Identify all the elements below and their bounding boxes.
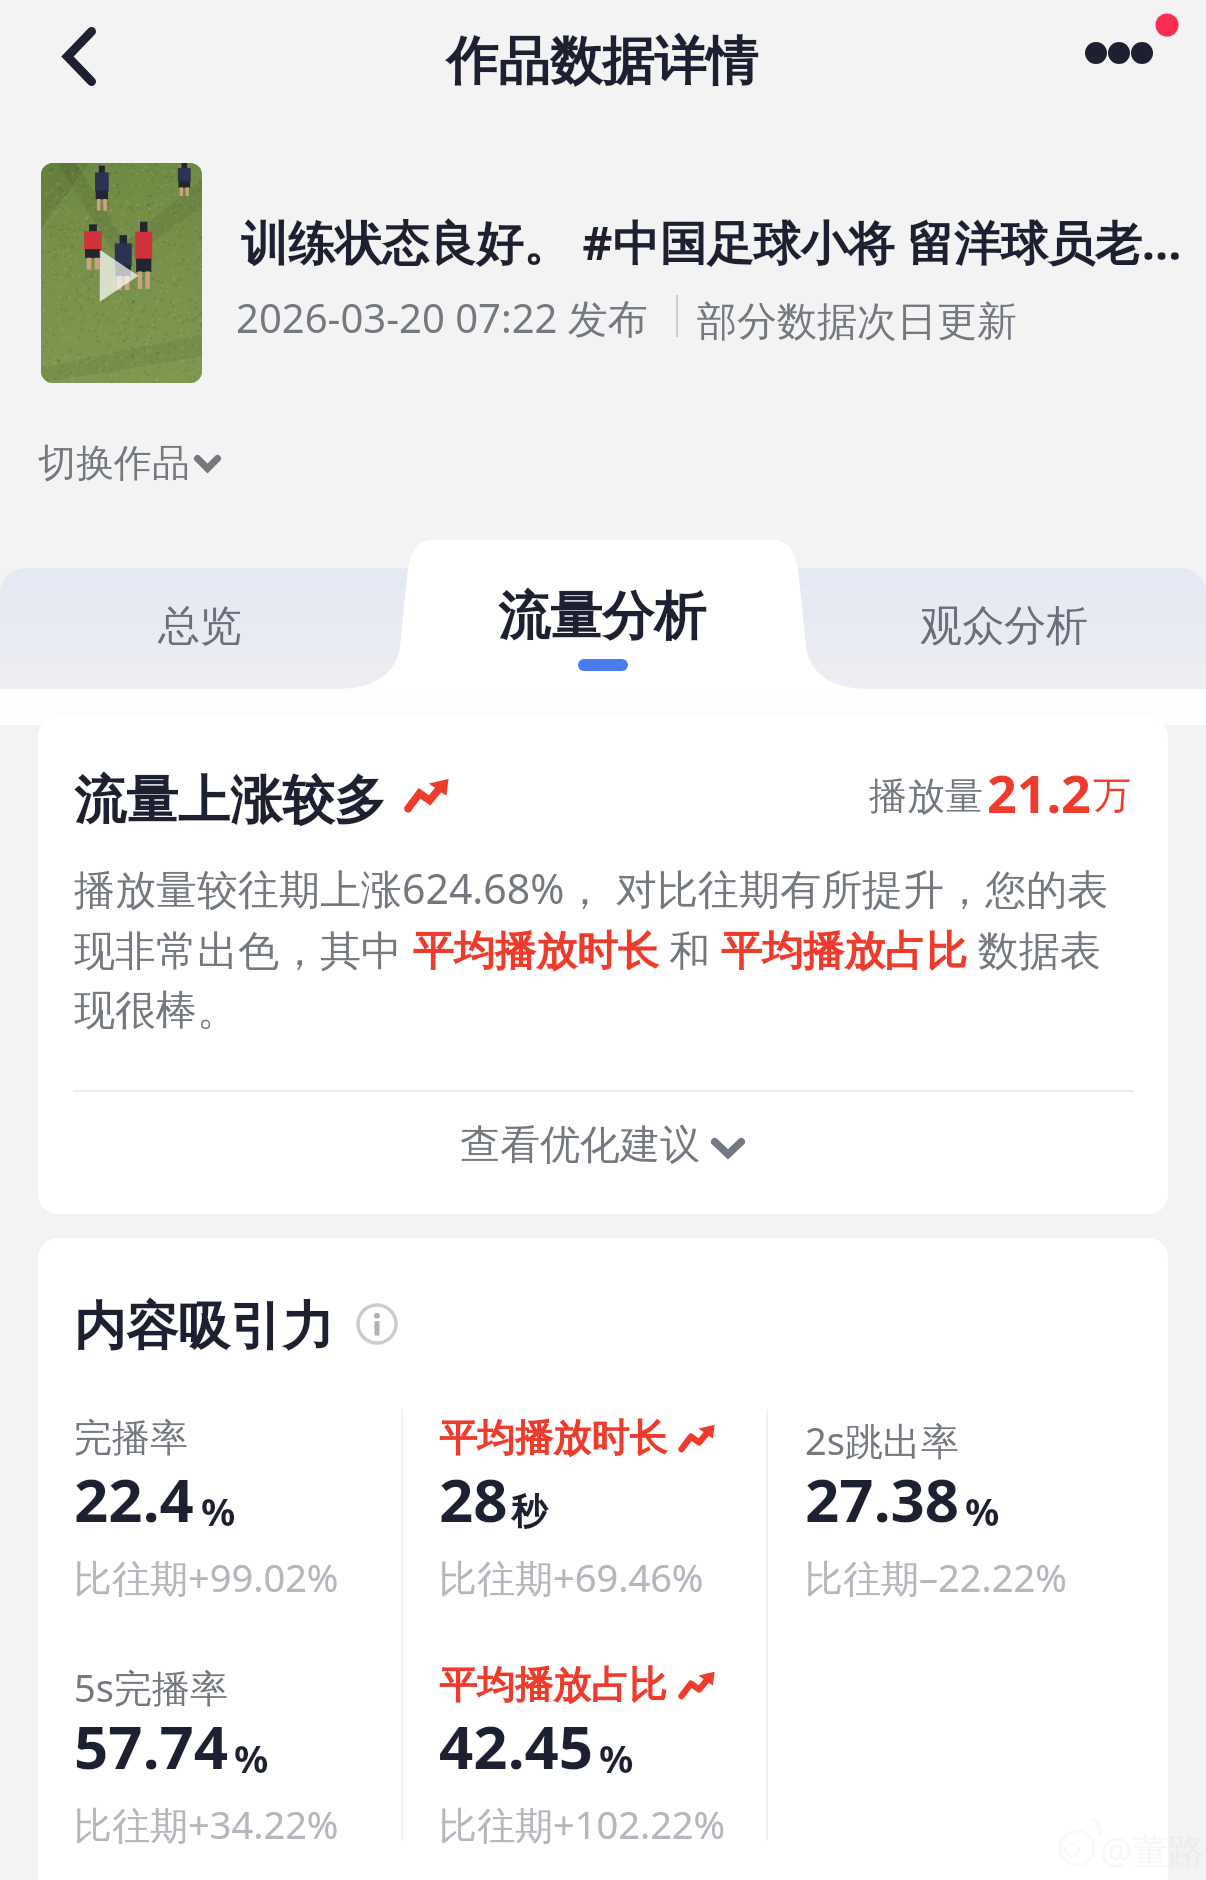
button[interactable]: 2s跳出率	[805, 1407, 1157, 1607]
staticText: 比往期–22.22%	[805, 1551, 1067, 1603]
staticText: 流量上涨较多	[74, 768, 386, 834]
button[interactable]: Play video	[41, 163, 202, 383]
button[interactable]: More options	[1068, 6, 1188, 90]
button[interactable]: 查看优化建议	[38, 1092, 1168, 1214]
staticText: 播放量	[869, 772, 983, 820]
staticText: 27.38	[805, 1458, 960, 1540]
staticText: 观众分析	[920, 600, 1088, 653]
button[interactable]	[400, 538, 802, 690]
staticText: 平均播放时长	[439, 1414, 667, 1462]
staticText: 比往期+69.46%	[439, 1551, 704, 1603]
staticText: 完播率	[74, 1414, 188, 1462]
staticText: 切换作品	[38, 439, 190, 487]
staticText: 比往期+99.02%	[74, 1551, 339, 1603]
staticText: 比往期+34.22%	[74, 1798, 339, 1850]
button[interactable]: 平均播放占比	[439, 1654, 791, 1854]
button[interactable]: 平均播放时长	[439, 1407, 791, 1607]
staticText: 22.4	[74, 1458, 194, 1540]
staticText: 57.74	[74, 1705, 229, 1787]
staticText: 2026-03-20 07:22 发布	[236, 290, 648, 345]
staticText: 内容吸引力	[74, 1294, 334, 1360]
button[interactable]: Info	[356, 1303, 398, 1345]
staticText: 训练状态良好。 #中国足球小将 留洋球员老...	[241, 210, 1206, 274]
button[interactable]	[0, 538, 400, 690]
staticText: 播放量较往期上涨624.68%， 对比往期有所提升，您的表现非常出色，其中 平均…	[74, 860, 1138, 1036]
staticText: 秒	[511, 1489, 547, 1534]
staticText: 28	[439, 1458, 508, 1540]
staticText: 平均播放占比	[439, 1661, 667, 1709]
staticText: 5s完播率	[74, 1661, 228, 1713]
staticText: 总览	[158, 600, 242, 653]
button[interactable]: 切换作品	[30, 432, 240, 494]
staticText: %	[599, 1732, 634, 1784]
staticText: %	[234, 1732, 269, 1784]
staticText: 42.45	[439, 1705, 594, 1787]
staticText: 比往期+102.22%	[439, 1798, 726, 1850]
button[interactable]: 完播率	[74, 1407, 426, 1607]
staticText: 作品数据详情	[446, 29, 758, 95]
staticText: 2s跳出率	[805, 1414, 959, 1466]
button[interactable]: 5s完播率	[74, 1654, 426, 1854]
staticText: 流量分析	[498, 584, 706, 650]
button[interactable]: Back	[30, 12, 130, 112]
staticText: 查看优化建议	[460, 1119, 700, 1169]
staticText: 部分数据次日更新	[697, 296, 1017, 346]
staticText: @董路	[1100, 1826, 1205, 1874]
button[interactable]	[802, 538, 1206, 690]
staticText: %	[201, 1485, 236, 1537]
staticText: %	[965, 1485, 1000, 1537]
staticText: 21.2	[987, 757, 1091, 828]
staticText: 万	[1093, 771, 1131, 819]
